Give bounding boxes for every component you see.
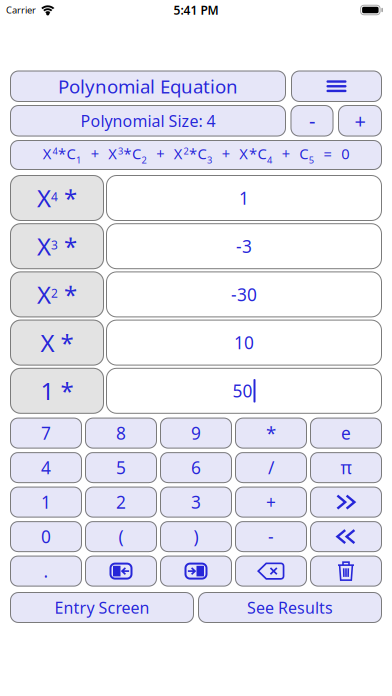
staticText: 5 (116, 456, 126, 479)
button[interactable]: 1 * (10, 368, 104, 414)
button[interactable] (310, 556, 382, 587)
staticText: Carrier (6, 4, 36, 16)
staticText: 1 (41, 491, 51, 514)
button[interactable]: π (310, 452, 382, 483)
staticText: 10 (234, 331, 254, 354)
staticText: X2 * (37, 278, 77, 310)
button[interactable]: - (290, 105, 333, 136)
staticText: 8 (116, 422, 126, 445)
button[interactable] (85, 556, 157, 587)
staticText: X3 * (37, 230, 77, 262)
button[interactable]: X2 * (10, 271, 104, 317)
staticText: 4 (41, 456, 51, 479)
staticText: 1 * (40, 375, 73, 407)
button[interactable]: -3 (106, 223, 382, 269)
staticText: 5:41 PM (173, 2, 218, 18)
button[interactable]: Polynomial Equation (10, 70, 286, 102)
staticText: + (354, 107, 365, 134)
staticText: ( (118, 525, 123, 548)
staticText: 7 (41, 422, 51, 445)
staticText: Polynomial Equation (58, 74, 238, 99)
staticText: X4 * (37, 182, 77, 214)
staticText: 1 (239, 186, 249, 209)
button[interactable]: 9 (160, 418, 232, 449)
button[interactable]: . (10, 556, 82, 587)
staticText: X * (40, 327, 73, 359)
staticText: X4*C1 + X3*C2 + X2*C3 + X*C4 + C5 = 0 (43, 144, 349, 166)
button[interactable]: ) (160, 521, 232, 552)
button[interactable]: 1 (10, 487, 82, 518)
button[interactable]: 6 (160, 452, 232, 483)
staticText: ) (193, 525, 198, 548)
staticText: - (309, 107, 315, 134)
staticText: -3 (236, 235, 252, 258)
button[interactable]: / (235, 452, 307, 483)
button[interactable]: X4*C1 + X3*C2 + X2*C3 + X*C4 + C5 = 0 (10, 140, 382, 170)
staticText: . (43, 560, 48, 583)
staticText: See Results (247, 597, 333, 618)
button[interactable]: e (310, 418, 382, 449)
button[interactable]: * (235, 418, 307, 449)
button[interactable]: - (235, 521, 307, 552)
staticText: / (268, 456, 274, 479)
button[interactable]: 0 (10, 521, 82, 552)
staticText: + (266, 491, 276, 514)
staticText: 0 (41, 525, 51, 548)
staticText: Entry Screen (54, 597, 149, 618)
staticText: - (268, 525, 274, 548)
button[interactable]: X4 * (10, 175, 104, 221)
button[interactable] (160, 556, 232, 587)
staticText: 3 (191, 491, 201, 514)
staticText: -30 (231, 283, 257, 306)
button[interactable]: -30 (106, 271, 382, 317)
staticText: 50 (232, 379, 252, 402)
staticText: 2 (116, 491, 126, 514)
staticText: * (266, 421, 276, 445)
button[interactable]: See Results (198, 592, 382, 623)
button[interactable]: 7 (10, 418, 82, 449)
button[interactable]: + (235, 487, 307, 518)
button[interactable] (310, 487, 382, 518)
staticText: π (340, 456, 351, 479)
button[interactable]: Entry Screen (10, 592, 194, 623)
button[interactable]: X * (10, 320, 104, 366)
button[interactable]: 8 (85, 418, 157, 449)
staticText: 9 (191, 422, 201, 445)
button[interactable]: 2 (85, 487, 157, 518)
button[interactable]: 50 (106, 368, 382, 414)
button[interactable]: + (338, 105, 382, 136)
staticText: 6 (191, 456, 201, 479)
button[interactable]: 10 (106, 320, 382, 366)
staticText: e (341, 422, 351, 445)
button[interactable]: ( (85, 521, 157, 552)
button[interactable]: X3 * (10, 223, 104, 269)
button[interactable]: Polynomial Size: 4 (10, 105, 286, 136)
button[interactable] (310, 521, 382, 552)
button[interactable] (291, 70, 382, 102)
button[interactable]: 4 (10, 452, 82, 483)
staticText: Polynomial Size: 4 (80, 110, 215, 131)
button[interactable]: 3 (160, 487, 232, 518)
button[interactable]: 1 (106, 175, 382, 221)
button[interactable]: 5 (85, 452, 157, 483)
button[interactable] (235, 556, 307, 587)
